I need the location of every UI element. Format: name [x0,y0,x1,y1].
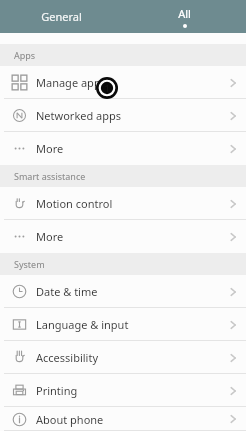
button[interactable]: General [0,0,123,33]
staticText: Language & input [36,317,129,332]
staticText: Apps [14,49,36,61]
staticText: About phone [36,412,104,427]
button[interactable]: Date & time [0,275,246,308]
staticText: Accessibility [36,350,99,365]
button[interactable]: Manage apps [0,66,246,99]
staticText: Networked apps [36,108,122,123]
button[interactable]: Networked apps [0,99,246,132]
button[interactable]: About phone [0,407,246,431]
staticText: Printing [36,383,78,398]
staticText: Smart assistance [14,170,86,182]
button[interactable]: Language & input [0,308,246,341]
staticText: Manage apps [36,75,106,90]
staticText: System [14,258,45,270]
staticText: 1 [104,82,110,94]
staticText: Motion control [36,196,113,211]
button[interactable]: All [123,0,246,33]
button[interactable]: More [0,132,246,165]
staticText: All [178,6,191,21]
button[interactable]: Accessibility [0,341,246,374]
staticText: Date & time [36,284,98,299]
staticText: More [36,141,64,156]
button[interactable]: Motion control [0,187,246,220]
staticText: More [36,229,64,244]
staticText: General [41,9,82,24]
button[interactable]: More [0,220,246,253]
button[interactable]: Printing [0,374,246,407]
